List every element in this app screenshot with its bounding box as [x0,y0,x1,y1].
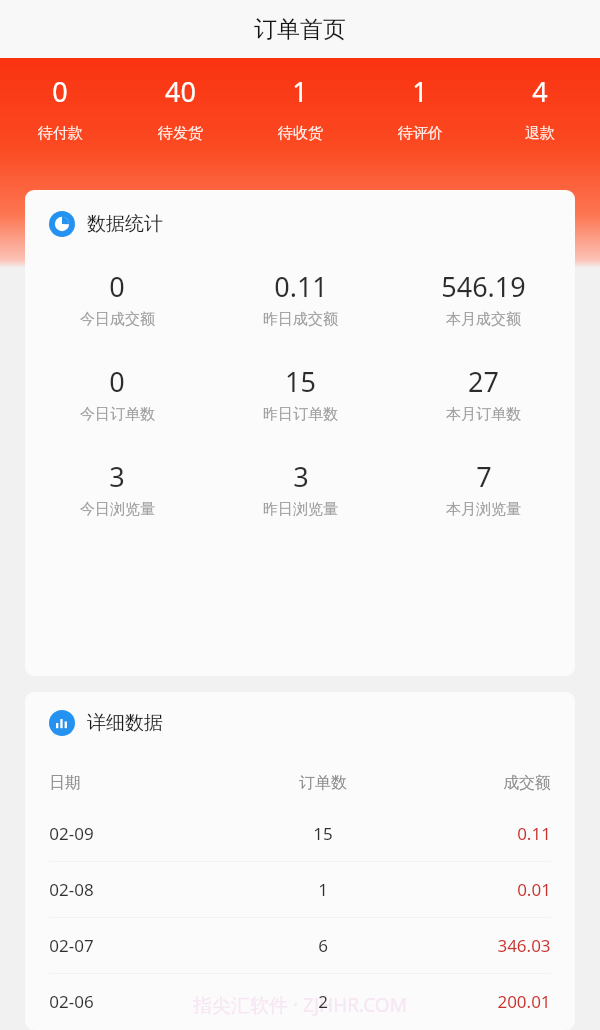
staticText: 指尖汇软件 · ZJHHR.COM [193,992,407,1018]
staticText: 0.11 [274,268,328,305]
button[interactable]: 4 [480,58,600,158]
button[interactable]: 3 [25,458,209,519]
staticText: 27 [468,363,499,400]
staticText: 40 [165,73,196,110]
button[interactable]: 02-06 [25,974,575,1029]
other: Data statistics [49,211,75,237]
staticText: 订单数 [299,773,347,793]
staticText: 6 [318,934,328,957]
staticText: 4 [532,73,548,110]
staticText: 15 [285,363,316,400]
staticText: 昨日成交额 [263,310,338,329]
other: Detailed data [49,710,75,736]
staticText: 02-07 [49,934,94,957]
staticText: 昨日订单数 [263,405,338,424]
staticText: 数据统计 [87,212,163,236]
staticText: 今日浏览量 [80,500,155,519]
staticText: 本月成交额 [446,310,521,329]
staticText: 1 [412,73,428,110]
staticText: 成交额 [503,773,551,793]
staticText: 待发货 [158,124,203,143]
staticText: 日期 [49,773,81,793]
button[interactable]: 40 [120,58,240,158]
staticText: 1 [318,878,328,901]
staticText: 546.19 [441,268,526,305]
staticText: 02-08 [49,878,94,901]
staticText: 0 [109,268,125,305]
button[interactable]: 1 [240,58,360,158]
staticText: 退款 [525,124,555,143]
button[interactable]: Data statistics [25,190,575,676]
staticText: 15 [313,822,333,845]
staticText: 3 [109,458,125,495]
button[interactable]: 7 [392,458,575,519]
staticText: 本月浏览量 [446,500,521,519]
staticText: 7 [476,458,492,495]
staticText: 0.11 [517,822,551,845]
staticText: 待付款 [38,124,83,143]
button[interactable]: 02-08 [25,862,575,918]
staticText: 02-09 [49,822,94,845]
staticText: 3 [293,458,309,495]
staticText: 0 [109,363,125,400]
button[interactable]: 02-07 [25,918,575,974]
staticText: 今日订单数 [80,405,155,424]
staticText: 346.03 [497,934,551,957]
button[interactable]: 27 [392,363,575,424]
staticText: 昨日浏览量 [263,500,338,519]
button[interactable]: 0 [0,58,120,158]
staticText: 今日成交额 [80,310,155,329]
staticText: 待收货 [278,124,323,143]
button[interactable]: 15 [209,363,392,424]
staticText: 详细数据 [87,711,163,735]
staticText: 200.01 [497,990,551,1013]
staticText: 1 [292,73,308,110]
button[interactable]: 3 [209,458,392,519]
button[interactable]: 0.11 [209,268,392,329]
button[interactable]: 0 [25,268,209,329]
staticText: 待评价 [398,124,443,143]
staticText: 0.01 [517,878,551,901]
button[interactable]: 0 [25,363,209,424]
staticText: 2 [318,990,328,1013]
staticText: 本月订单数 [446,405,521,424]
button[interactable]: 546.19 [392,268,575,329]
button[interactable]: 1 [360,58,480,158]
button[interactable]: 日期 [25,760,575,806]
button[interactable]: 02-09 [25,806,575,862]
staticText: 订单首页 [254,15,346,44]
staticText: 02-06 [49,990,94,1013]
staticText: 0 [52,73,68,110]
